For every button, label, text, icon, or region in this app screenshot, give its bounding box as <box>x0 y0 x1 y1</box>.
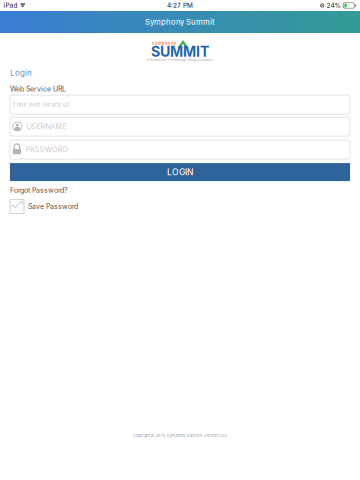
staticText: SUMMIT <box>151 43 209 60</box>
staticText: Login <box>10 68 32 78</box>
button[interactable]: LOGIN <box>10 163 350 181</box>
staticText: s y m p h o n y <box>152 41 176 46</box>
staticText: PASSWORD <box>26 145 68 154</box>
staticText: A Symphony Technology Group Company <box>147 58 213 62</box>
staticText: LOGIN <box>167 167 193 177</box>
staticText: Save Password <box>28 202 78 211</box>
staticText: Forgot Password? <box>10 186 68 194</box>
button[interactable]: Save Password <box>10 194 78 213</box>
staticText: Enter web service url <box>13 101 69 108</box>
staticText: Symphony Summit <box>145 17 215 27</box>
staticText: 4:27 PM <box>167 2 193 9</box>
button[interactable]: Forgot Password? <box>10 181 68 194</box>
staticText: 24% <box>327 2 341 9</box>
staticText: Web Service URL <box>10 85 66 93</box>
staticText: iPad <box>4 2 18 9</box>
staticText: USERNAME <box>27 122 67 131</box>
staticText: Copyright © 2016, Symphony Summit. Versi… <box>132 433 227 438</box>
